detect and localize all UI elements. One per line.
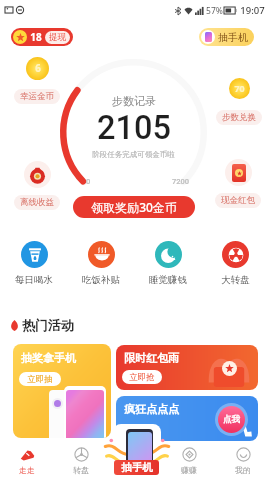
button[interactable]: 每日喝水	[0, 241, 68, 286]
staticText: 57%	[206, 5, 223, 17]
staticText: 步数兑换	[222, 112, 256, 123]
staticText: 领取奖励30金币	[91, 199, 177, 215]
button[interactable]: 离线收益	[14, 161, 60, 210]
staticText: 2105	[97, 109, 171, 147]
button[interactable]: 70	[216, 78, 262, 125]
staticText: 赚赚	[181, 465, 197, 475]
staticText: 立即抽	[27, 374, 53, 385]
button[interactable]: 吃饭补贴	[67, 241, 135, 286]
button[interactable]: 限时红包雨	[116, 345, 258, 390]
staticText: 6	[35, 62, 41, 75]
button[interactable]: 6	[14, 57, 60, 104]
button[interactable]: 18	[11, 28, 73, 46]
staticText: 走走	[19, 465, 35, 475]
button[interactable]: 赚赚	[162, 441, 216, 480]
button[interactable]: 走走	[0, 441, 54, 480]
button[interactable]: 抽手机	[104, 422, 168, 478]
staticText: 7200	[172, 177, 190, 186]
staticText: 大转盘	[221, 274, 250, 286]
staticText: 抽手机	[121, 461, 153, 474]
button[interactable]: 抽手机	[199, 28, 254, 46]
staticText: 转盘	[73, 465, 89, 475]
button[interactable]: 领取奖励30金币	[73, 196, 195, 218]
staticText: 0	[86, 177, 91, 186]
button[interactable]: 睡觉赚钱	[134, 241, 202, 286]
staticText: 疯狂点点点	[124, 402, 179, 416]
staticText: 睡觉赚钱	[149, 274, 187, 286]
staticText: 立即抢	[129, 372, 155, 383]
staticText: 提现	[49, 32, 66, 43]
staticText: 抽奖拿手机	[21, 351, 76, 365]
staticText: 步数记录	[112, 94, 156, 108]
staticText: 我的	[235, 465, 251, 475]
button[interactable]: 抽奖拿手机	[13, 344, 111, 438]
staticText: 阶段任务完成可领金币啦	[92, 150, 175, 159]
staticText: 19:07	[240, 4, 265, 17]
button[interactable]: 现金红包	[215, 159, 261, 208]
staticText: 每日喝水	[15, 274, 53, 286]
staticText: 18	[30, 30, 42, 44]
button[interactable]: 我的	[216, 441, 270, 480]
button[interactable]: 疯狂点点点	[116, 396, 258, 441]
staticText: 70	[234, 83, 245, 95]
staticText: 点我	[223, 414, 240, 425]
staticText: 热门活动	[22, 317, 74, 333]
staticText: 抽手机	[218, 31, 248, 44]
staticText: 吃饭补贴	[82, 274, 120, 286]
staticText: 现金红包	[221, 195, 255, 206]
button[interactable]: 大转盘	[201, 241, 269, 286]
staticText: 限时红包雨	[124, 351, 179, 365]
staticText: 离线收益	[20, 197, 54, 208]
staticText: 幸运金币	[20, 91, 54, 102]
button[interactable]: 转盘	[54, 441, 108, 480]
